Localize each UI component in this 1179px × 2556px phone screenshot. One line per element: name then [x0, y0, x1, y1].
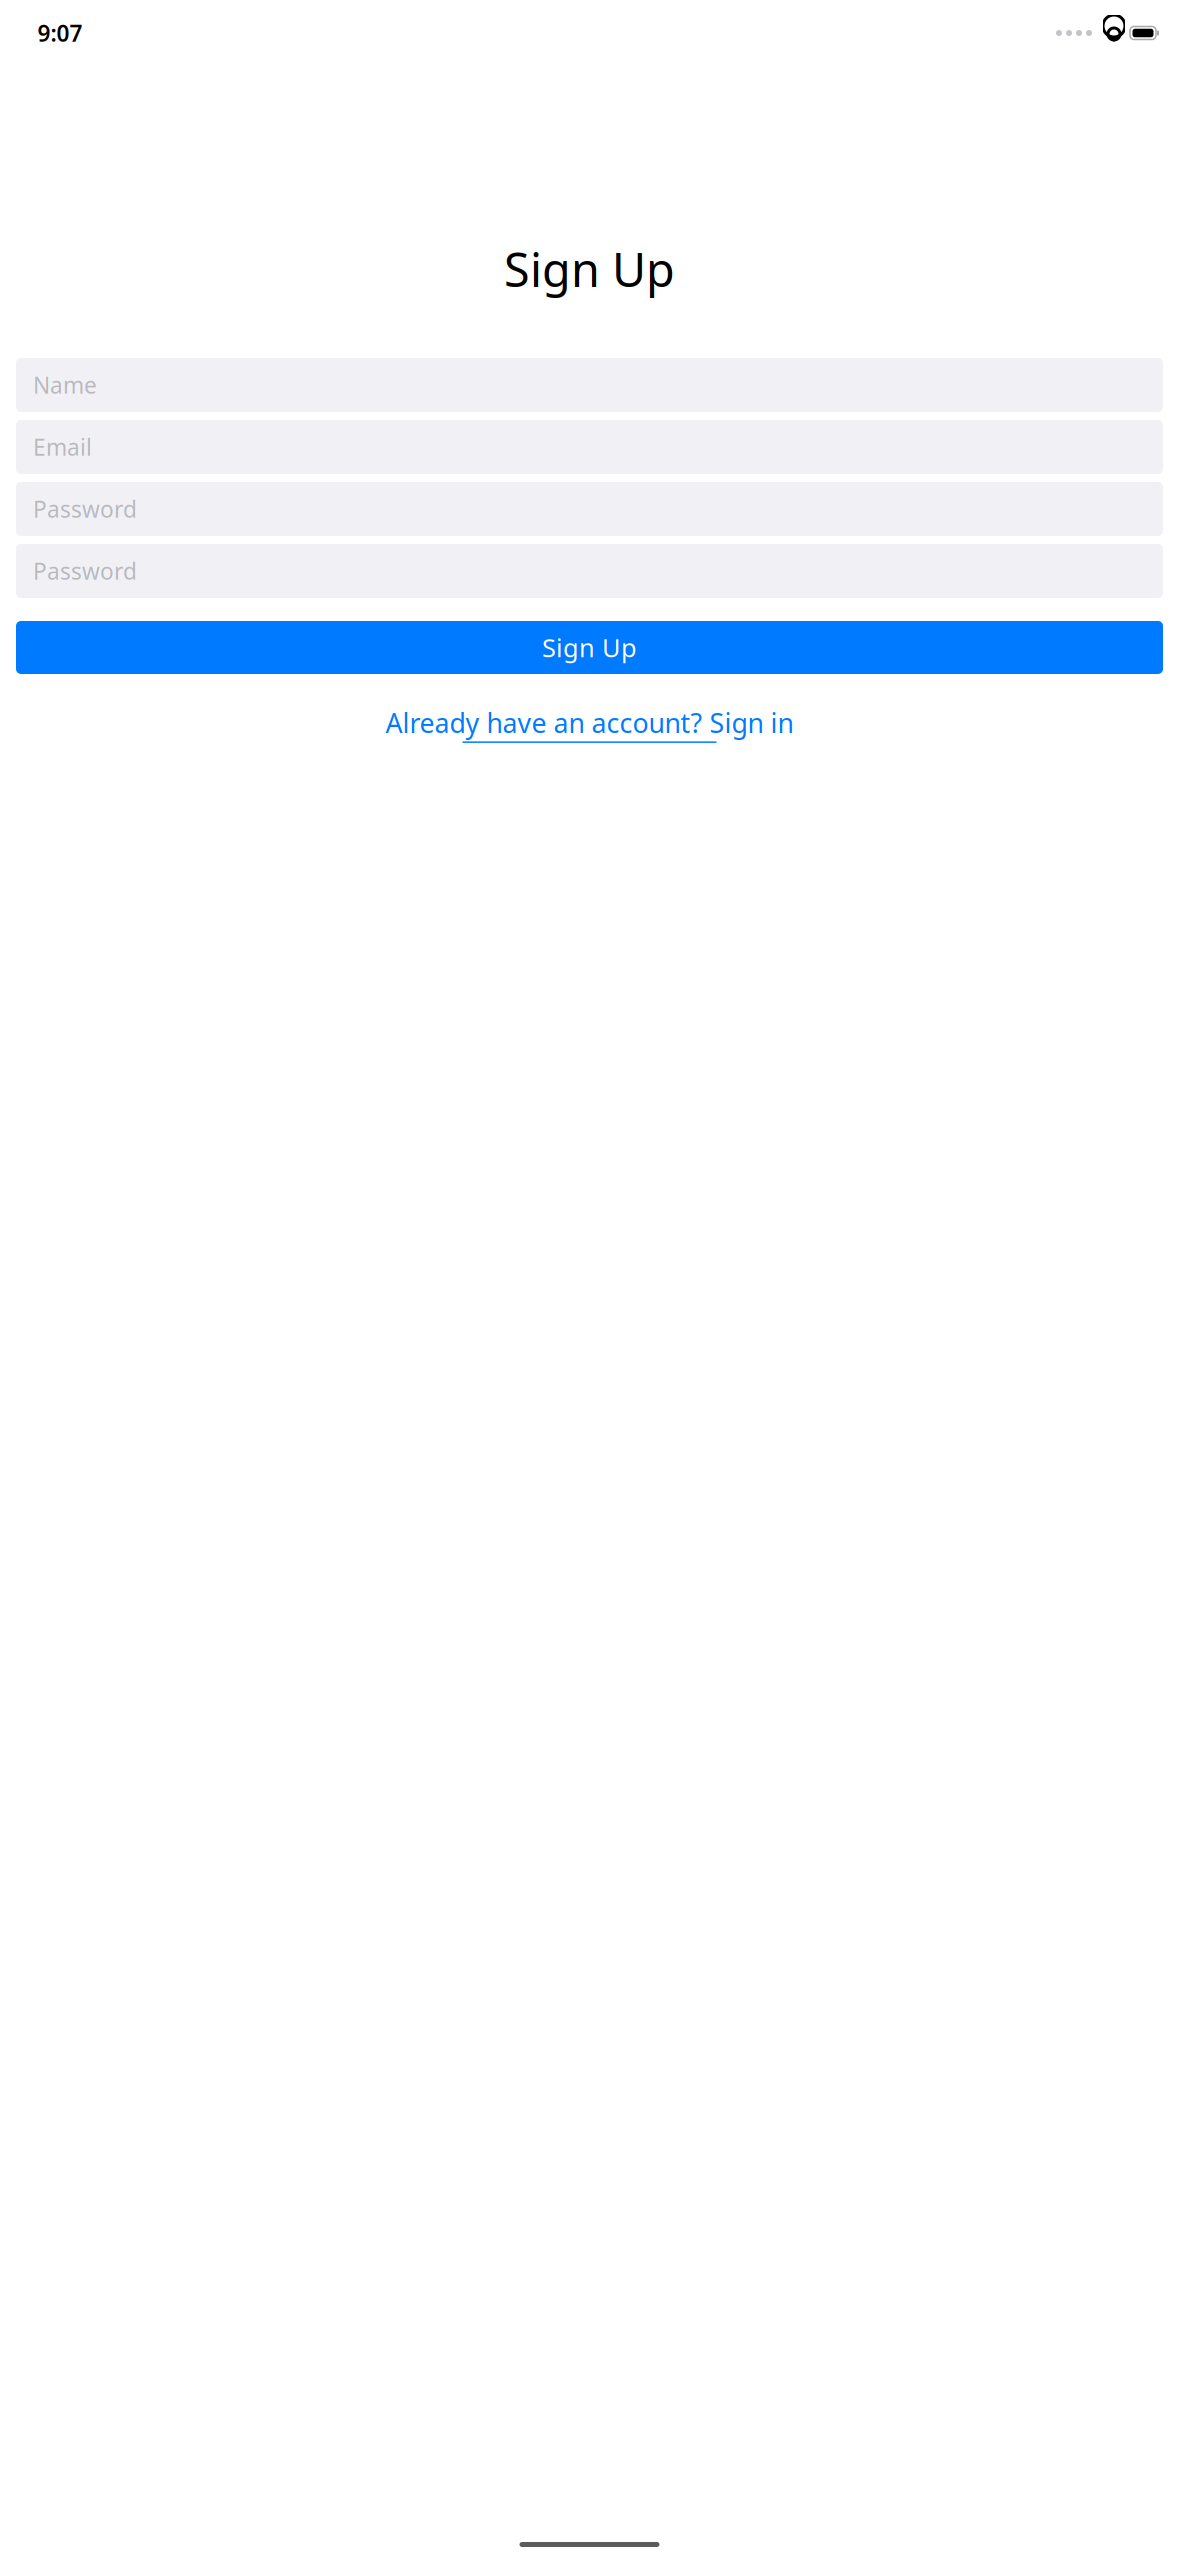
button[interactable]: Already have an account? Sign in [385, 705, 793, 743]
staticText: Name [33, 370, 97, 400]
button[interactable]: Password [16, 482, 1163, 536]
button[interactable]: Sign Up [16, 621, 1163, 674]
staticText: Already have an account? Sign in [385, 705, 793, 740]
button[interactable]: Password [16, 544, 1163, 598]
button[interactable]: Email [16, 420, 1163, 474]
staticText: Sign Up [504, 238, 675, 300]
staticText: 9:07 [37, 18, 82, 48]
staticText: Password [33, 556, 137, 586]
button[interactable]: Name [16, 358, 1163, 412]
staticText: Password [33, 494, 137, 524]
staticText: Email [33, 432, 92, 462]
staticText: Sign Up [542, 631, 637, 664]
